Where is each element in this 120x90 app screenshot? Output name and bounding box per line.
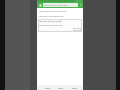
staticText: search query text here [44, 4, 68, 7]
button[interactable]: Menu [37, 2, 43, 8]
button[interactable]: More options [78, 2, 83, 8]
button[interactable]: ACTION [73, 28, 81, 31]
staticText: ACTION [74, 29, 80, 31]
staticText: some result line of text here [39, 10, 67, 13]
button[interactable]: search query text here [43, 3, 78, 7]
button[interactable]: Back [43, 86, 51, 90]
button[interactable]: card title line of content [38, 19, 82, 32]
button[interactable]: Home [56, 86, 64, 90]
staticText: card title line of content [39, 20, 62, 23]
staticText: secondary descriptive line [39, 15, 64, 18]
button[interactable]: Recents [70, 86, 78, 90]
button[interactable]: secondary descriptive line [39, 15, 81, 18]
staticText: supporting detail text row [39, 24, 62, 27]
button[interactable]: some result line of text here [39, 10, 81, 13]
